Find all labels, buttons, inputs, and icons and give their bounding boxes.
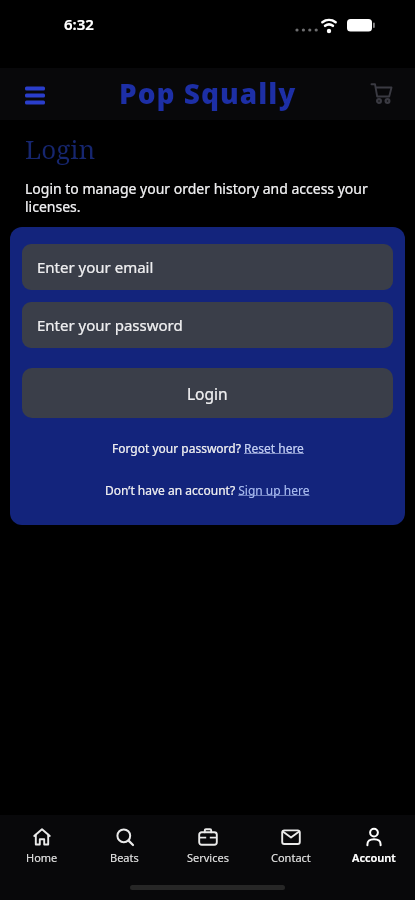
- button[interactable]: Contact: [249, 825, 332, 865]
- staticText: Don’t have an account? Sign up here: [105, 482, 310, 498]
- button[interactable]: Enter your email: [22, 244, 393, 290]
- staticText: Services: [187, 850, 229, 865]
- button[interactable]: Forgot your password? Reset here: [22, 440, 393, 456]
- button[interactable]: Services: [166, 825, 249, 865]
- button[interactable]: Home: [0, 825, 83, 865]
- staticText: Forgot your password? Reset here: [112, 440, 304, 456]
- staticText: Pop Squally: [119, 74, 297, 112]
- staticText: Beats: [110, 850, 139, 865]
- staticText: Enter your password: [37, 315, 183, 335]
- staticText: Home: [26, 850, 58, 865]
- staticText: Login: [25, 131, 96, 166]
- staticText: Login to manage your order history and a…: [25, 179, 368, 216]
- staticText: Enter your email: [37, 257, 154, 277]
- staticText: 6:32: [64, 14, 94, 34]
- staticText: Contact: [271, 850, 311, 865]
- button[interactable]: [18, 77, 52, 111]
- staticText: Login: [187, 383, 228, 404]
- staticText: Account: [352, 850, 396, 865]
- button[interactable]: Don’t have an account? Sign up here: [22, 482, 393, 498]
- button[interactable]: Beats: [83, 825, 166, 865]
- button[interactable]: Login: [22, 368, 393, 418]
- button[interactable]: Account: [332, 825, 415, 865]
- button[interactable]: Enter your password: [22, 302, 393, 348]
- button[interactable]: [366, 78, 398, 110]
